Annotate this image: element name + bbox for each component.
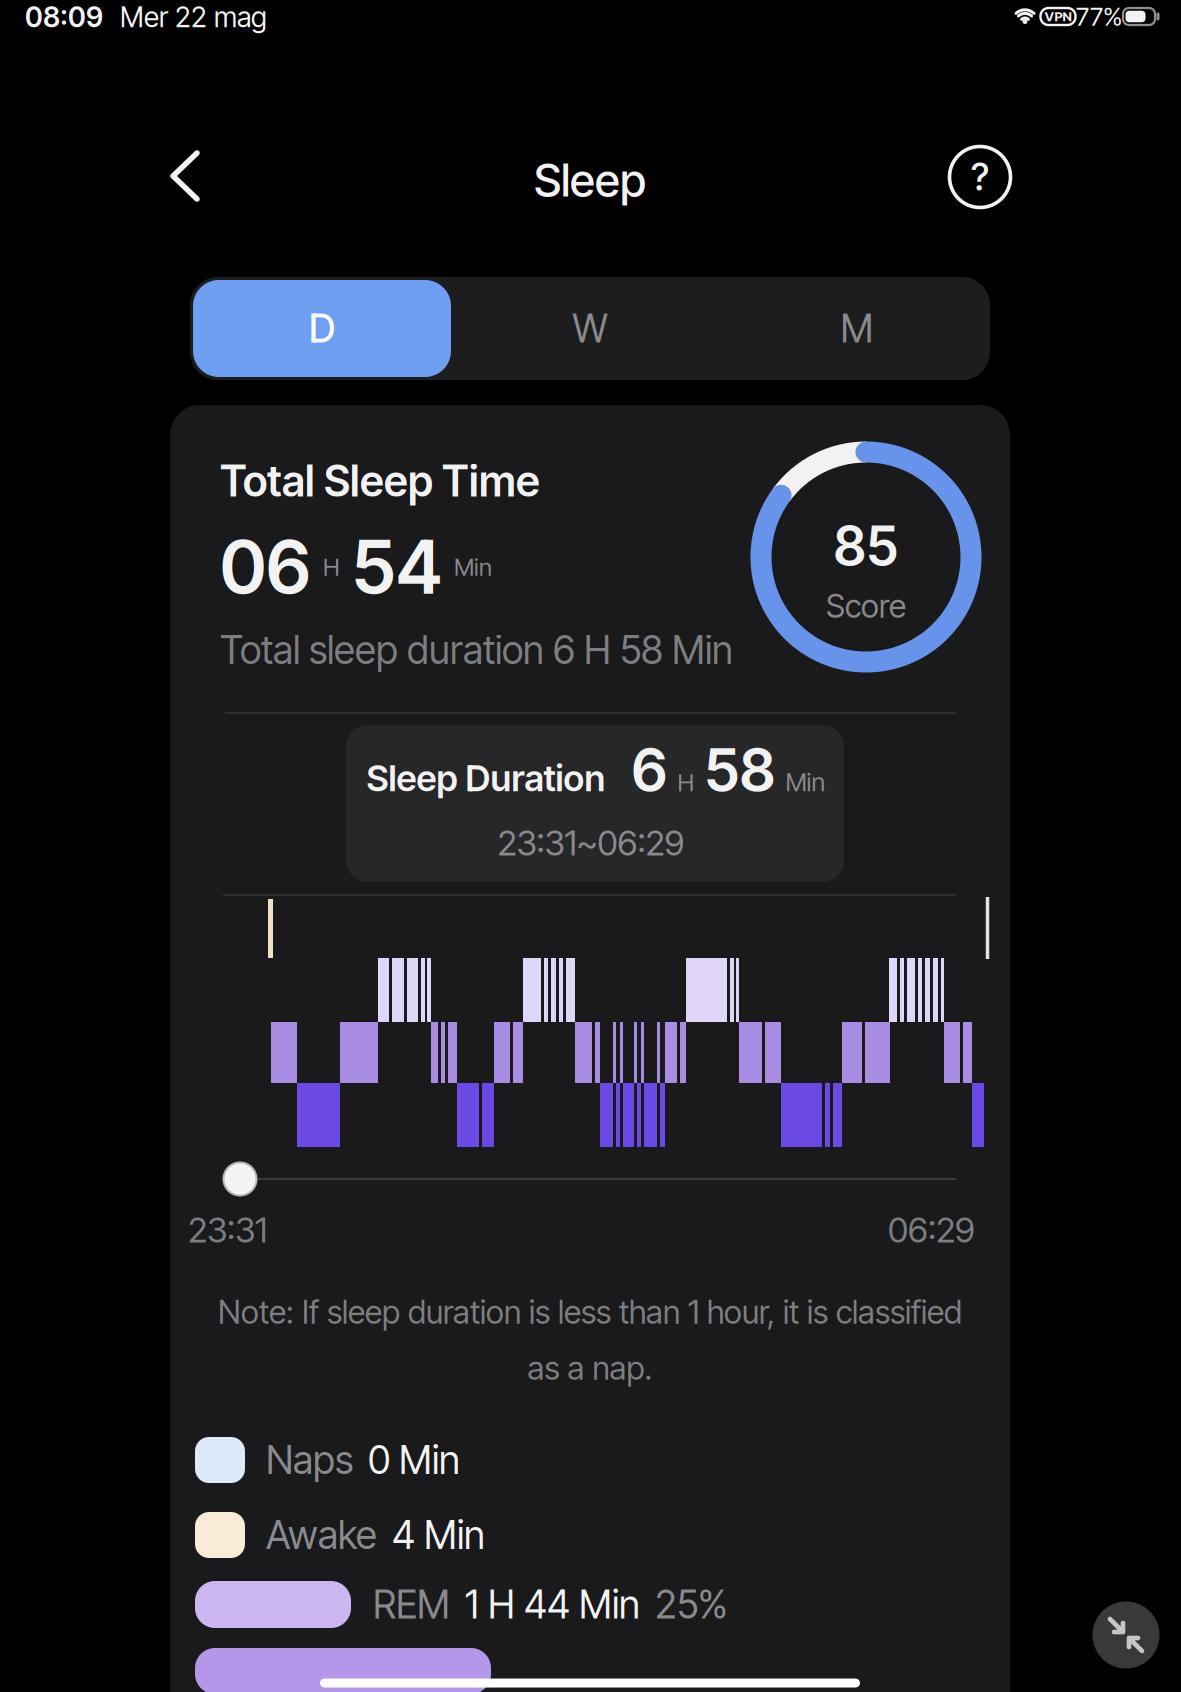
staticText: VPN bbox=[1044, 9, 1071, 24]
staticText: 0 Min bbox=[368, 1437, 460, 1483]
staticText: 23:31~06:29 bbox=[497, 823, 684, 863]
staticText: 4 Min bbox=[392, 1512, 485, 1558]
staticText: Naps bbox=[266, 1437, 353, 1483]
staticText: Sleep Duration bbox=[366, 757, 605, 799]
staticText: Total Sleep Time bbox=[220, 456, 540, 506]
staticText: ? bbox=[971, 155, 989, 199]
staticText: M bbox=[840, 306, 873, 351]
staticText: 58 bbox=[704, 735, 775, 805]
staticText: 06 bbox=[220, 524, 311, 610]
staticText: W bbox=[572, 306, 607, 351]
staticText: 08:09 bbox=[25, 0, 103, 33]
button[interactable]: Collapse bbox=[1092, 1601, 1159, 1668]
staticText: 06:29 bbox=[888, 1210, 975, 1250]
staticText: as a nap. bbox=[527, 1349, 652, 1387]
staticText: D bbox=[309, 306, 335, 351]
staticText: Mer 22 mag bbox=[120, 0, 267, 33]
staticText: Awake bbox=[266, 1512, 377, 1558]
staticText: H bbox=[323, 553, 340, 581]
staticText: REM bbox=[373, 1582, 450, 1627]
staticText: 1 H 44 Min bbox=[465, 1582, 640, 1627]
button[interactable]: W bbox=[461, 280, 719, 377]
staticText: Min bbox=[785, 767, 825, 797]
staticText: Min bbox=[454, 553, 492, 581]
staticText: 54 bbox=[352, 524, 442, 610]
staticText: Note: If sleep duration is less than 1 h… bbox=[218, 1293, 962, 1331]
button[interactable]: M bbox=[728, 280, 986, 377]
staticText: Sleep bbox=[534, 153, 646, 207]
staticText: 85 bbox=[833, 514, 898, 577]
staticText: Score bbox=[826, 587, 906, 625]
button[interactable]: Back bbox=[169, 151, 203, 203]
button[interactable]: Help bbox=[948, 145, 1012, 209]
staticText: H bbox=[677, 768, 694, 797]
staticText: 25% bbox=[655, 1582, 728, 1627]
button[interactable]: Slider handle bbox=[223, 1162, 257, 1196]
staticText: Total sleep duration 6 H 58 Min bbox=[220, 627, 733, 673]
staticText: 6 bbox=[631, 735, 667, 805]
staticText: 23:31 bbox=[188, 1210, 267, 1250]
staticText: 77% bbox=[1076, 2, 1122, 31]
button[interactable]: D bbox=[193, 280, 451, 377]
